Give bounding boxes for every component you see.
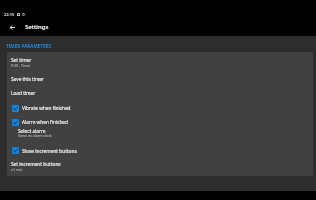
- staticText: Save this timer: [11, 76, 45, 82]
- button[interactable]: Set timer: [7, 53, 313, 72]
- staticText: Set increment buttons: [11, 161, 61, 167]
- staticText: TIMER PARAMETERS: [6, 43, 52, 49]
- staticText: Set timer: [11, 57, 32, 63]
- button[interactable]: Vibrate when finished: [7, 99, 313, 114]
- staticText: Show increment buttons: [22, 148, 77, 154]
- button[interactable]: Select alarm: [7, 126, 313, 142]
- staticText: 0:30 - Timer: [11, 63, 31, 68]
- staticText: Settings: [25, 23, 49, 31]
- staticText: Same as alarm clock: [18, 133, 52, 138]
- button[interactable]: Save this timer: [7, 72, 313, 85]
- button[interactable]: Navigate up: [3, 18, 21, 36]
- button[interactable]: Alarm when finished: [7, 114, 313, 126]
- staticText: 22:15: [4, 12, 15, 17]
- staticText: Load timer: [11, 90, 36, 96]
- staticText: Alarm when finished: [22, 119, 68, 125]
- button[interactable]: Show increment buttons: [7, 142, 313, 157]
- button[interactable]: Load timer: [7, 85, 313, 99]
- staticText: ±1 min: [11, 167, 23, 172]
- button[interactable]: Set increment buttons: [7, 157, 313, 176]
- staticText: Select alarm: [18, 128, 46, 134]
- staticText: Vibrate when finished: [22, 105, 71, 111]
